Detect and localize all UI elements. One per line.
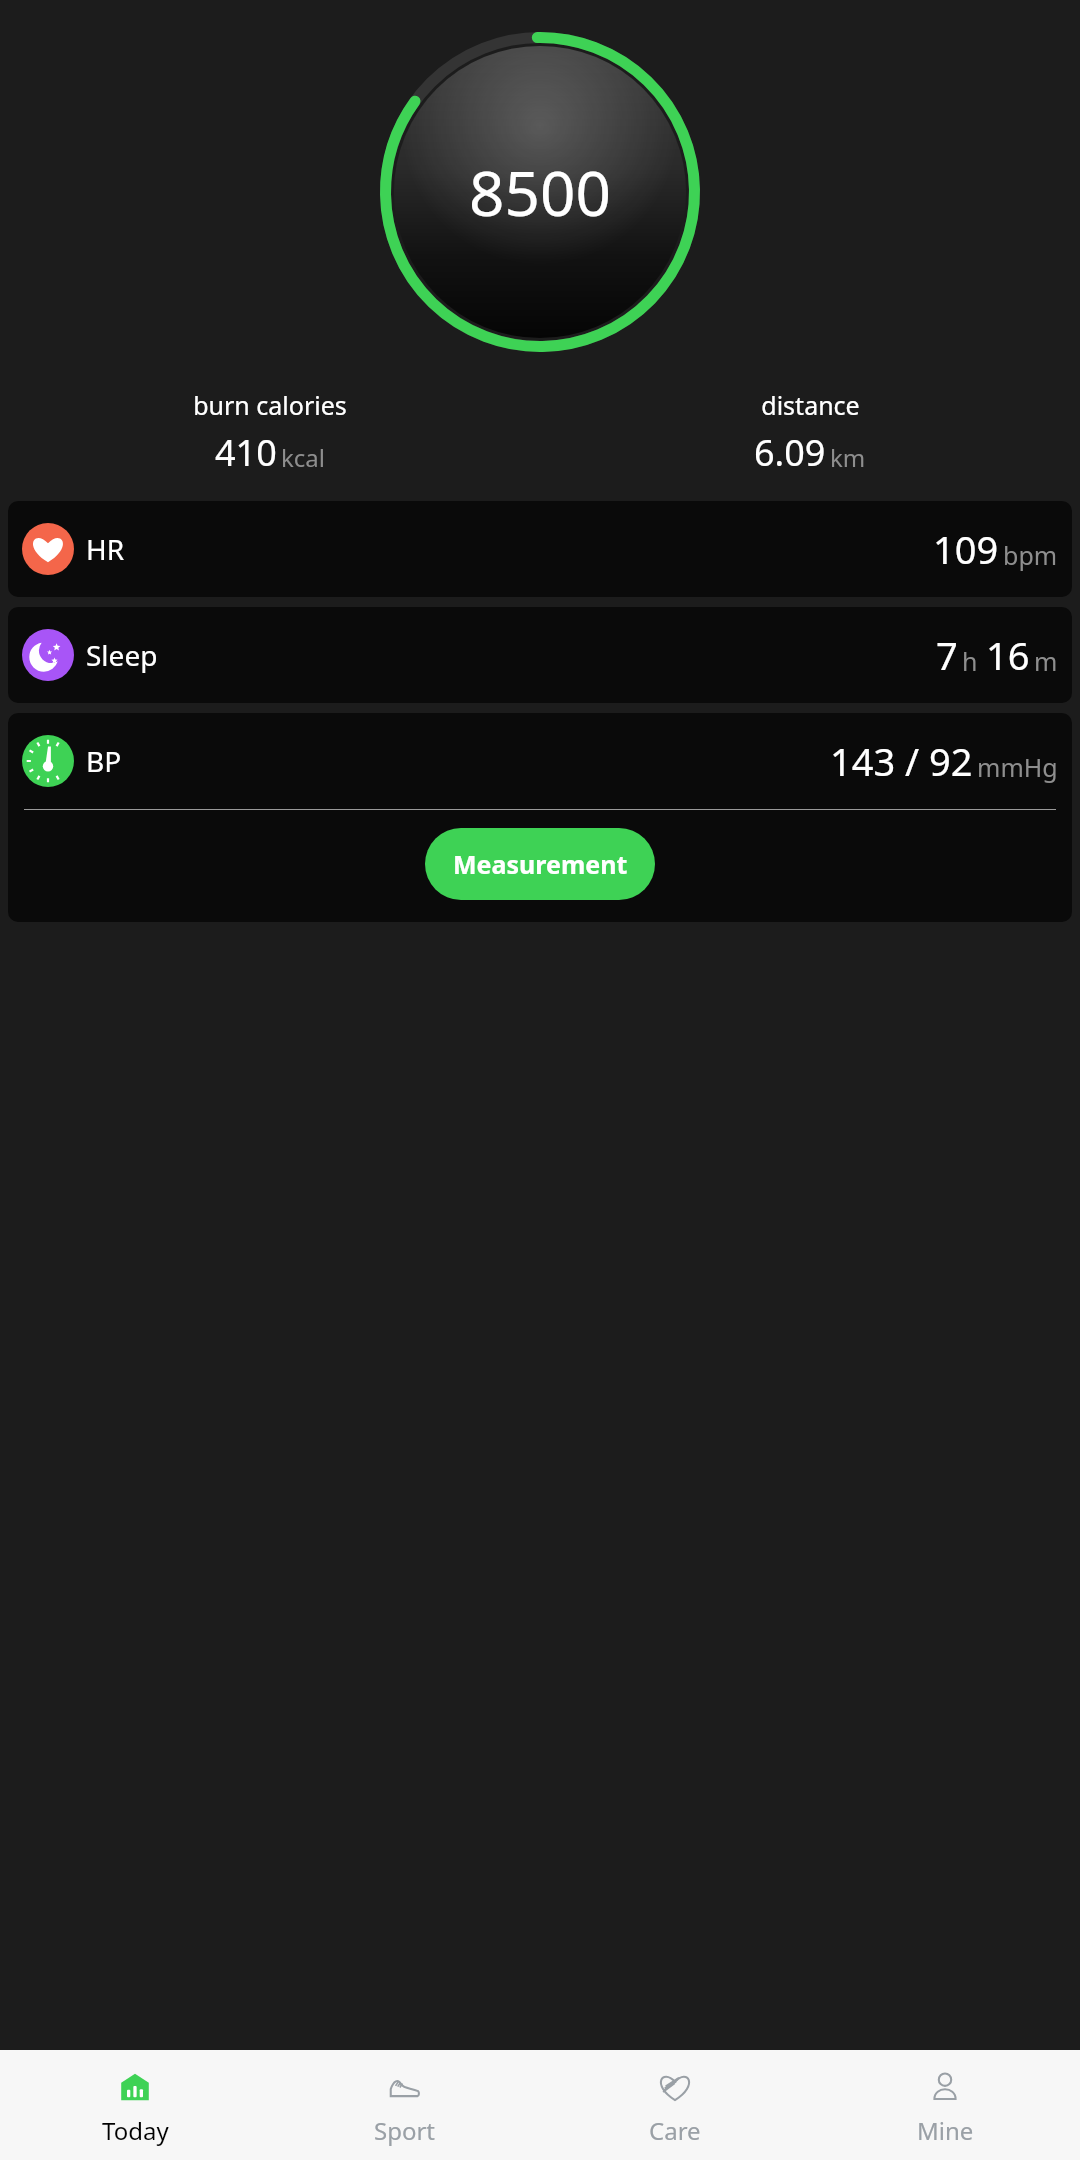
staticText: 16 (986, 629, 1030, 681)
staticText: h (962, 644, 978, 678)
staticText: HR (86, 530, 125, 568)
button[interactable]: Care (540, 2064, 810, 2147)
staticText: bpm (1003, 538, 1058, 572)
staticText: Sport (374, 2114, 436, 2147)
staticText: Measurement (453, 847, 628, 881)
staticText: BP (86, 742, 122, 780)
staticText: mmHg (977, 750, 1058, 784)
button[interactable]: 8500 (380, 32, 700, 352)
staticText: distance (761, 388, 860, 422)
staticText: burn calories (193, 388, 347, 422)
staticText: 109 (933, 523, 999, 575)
staticText: 143 / 92 (830, 735, 973, 787)
button[interactable]: HR (8, 501, 1072, 597)
staticText: Mine (917, 2114, 974, 2147)
staticText: m (1034, 644, 1058, 678)
button[interactable]: Mine (810, 2064, 1080, 2147)
button[interactable]: Measurement (425, 828, 655, 900)
button[interactable]: Sport (270, 2064, 540, 2147)
staticText: Today (102, 2114, 169, 2147)
button[interactable]: Today (0, 2064, 270, 2147)
staticText: kcal (281, 441, 325, 474)
button[interactable]: burn calories (0, 388, 540, 477)
staticText: 410 (215, 428, 277, 477)
staticText: km (830, 441, 866, 474)
staticText: 7 (936, 629, 958, 681)
staticText: 6.09 (754, 428, 826, 477)
staticText: 8500 (469, 150, 611, 234)
button[interactable]: Sleep (8, 607, 1072, 703)
staticText: Care (649, 2114, 701, 2147)
staticText: Sleep (86, 636, 158, 674)
button[interactable]: distance (540, 388, 1080, 477)
